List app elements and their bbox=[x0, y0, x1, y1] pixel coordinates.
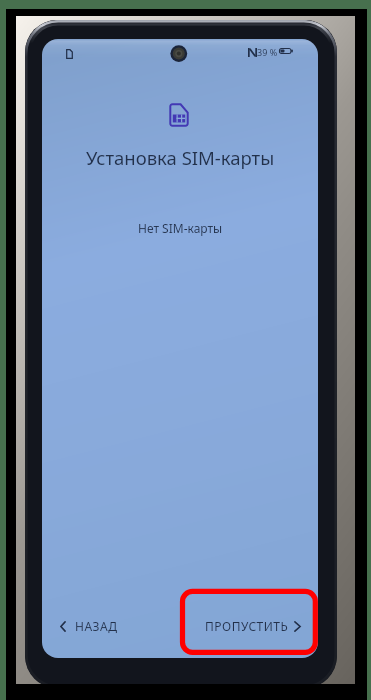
staticText: Нет SIM-карты bbox=[138, 220, 223, 236]
staticText: НАЗАД bbox=[75, 618, 118, 634]
staticText: 39 % bbox=[257, 46, 278, 58]
button[interactable]: ПРОПУСТИТЬ bbox=[193, 606, 313, 646]
staticText: Установка SIM-карты bbox=[86, 145, 275, 170]
staticText: ПРОПУСТИТЬ bbox=[205, 618, 289, 634]
button[interactable]: НАЗАД bbox=[48, 606, 132, 646]
